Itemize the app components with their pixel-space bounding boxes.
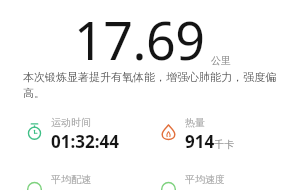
staticText: 公里 bbox=[211, 54, 231, 67]
other: Average speed bbox=[160, 180, 177, 190]
staticText: 914千卡 bbox=[185, 130, 235, 153]
staticText: 本次锻炼显著提升有氧体能，增强心肺能力，强度偏高。 bbox=[23, 70, 286, 100]
staticText: 平均速度 bbox=[185, 173, 225, 186]
button[interactable]: Duration bbox=[0, 116, 152, 153]
other: Duration bbox=[26, 123, 43, 140]
other: Calories bbox=[160, 123, 177, 140]
button[interactable]: Average speed bbox=[152, 173, 304, 190]
button[interactable]: Average pace bbox=[0, 173, 152, 190]
staticText: 17.69 bbox=[74, 4, 205, 75]
button[interactable]: Calories bbox=[152, 116, 304, 153]
staticText: 运动时间 bbox=[51, 116, 91, 129]
staticText: 01:32:44 bbox=[51, 130, 119, 153]
other: Average pace bbox=[26, 180, 43, 190]
staticText: 热量 bbox=[185, 116, 205, 129]
staticText: 平均配速 bbox=[51, 173, 91, 186]
